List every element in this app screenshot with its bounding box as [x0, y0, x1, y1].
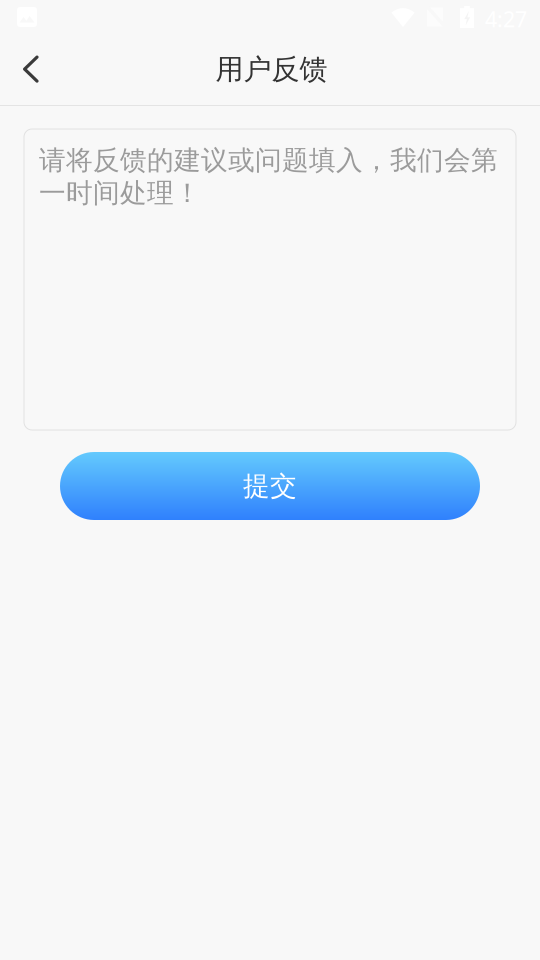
button[interactable]: Back	[0, 35, 62, 104]
button[interactable]: 请将反馈的建议或问题填入，我们会第一时间处理！	[24, 129, 516, 430]
staticText: 提交	[243, 470, 297, 502]
staticText: 请将反馈的建议或问题填入，我们会第一时间处理！	[39, 144, 498, 209]
staticText: 用户反馈	[215, 52, 327, 87]
button[interactable]: 提交	[60, 452, 480, 520]
